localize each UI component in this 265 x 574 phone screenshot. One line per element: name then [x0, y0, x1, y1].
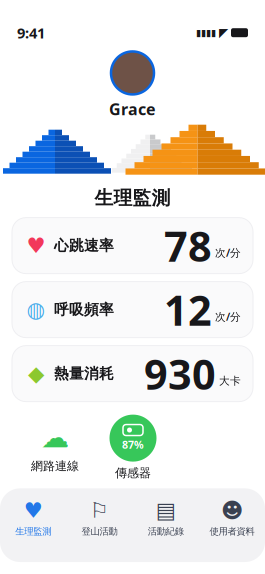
staticText: ♥ — [26, 233, 45, 258]
staticText: ◆ — [28, 361, 44, 386]
staticText: 熱量消耗 — [54, 365, 114, 383]
staticText: 78 — [164, 218, 212, 273]
staticText: 生理監測 — [94, 187, 170, 210]
button[interactable]: ⚐ — [66, 493, 132, 542]
staticText: ♥ — [24, 498, 43, 523]
staticText: 次/分 — [215, 309, 241, 324]
staticText: ▤ — [156, 498, 176, 523]
staticText: 大卡 — [219, 374, 241, 388]
button[interactable]: ♥ — [12, 218, 253, 274]
button[interactable]: ☻ — [199, 493, 265, 542]
staticText: 930 — [144, 346, 216, 401]
staticText: ◍ — [26, 297, 45, 322]
staticText: 9:41 — [17, 23, 45, 42]
button[interactable]: ♥ — [0, 493, 66, 542]
staticText: 生理監測 — [15, 526, 51, 537]
staticText: 心跳速率 — [54, 237, 114, 255]
staticText: ◤ — [219, 26, 228, 39]
staticText: ☻ — [221, 498, 243, 523]
staticText: 87% — [122, 437, 144, 452]
button[interactable]: ☁ — [16, 422, 94, 473]
staticText: ⚐ — [90, 498, 109, 523]
button[interactable]: ◆ — [12, 346, 253, 402]
staticText: 呼吸頻率 — [54, 301, 114, 319]
staticText: 網路連線 — [31, 458, 79, 473]
staticText: 使用者資料 — [209, 526, 254, 537]
staticText: 活動紀錄 — [148, 526, 184, 537]
button[interactable]: ◍ — [12, 282, 253, 338]
staticText: ▮▮▮▮ — [196, 27, 216, 38]
button[interactable]: ▤ — [132, 493, 199, 542]
staticText: Grace — [109, 98, 156, 120]
staticText: 12 — [164, 282, 212, 337]
staticText: 登山活動 — [81, 526, 117, 537]
staticText: ☁ — [41, 422, 69, 453]
staticText: 傳感器 — [115, 466, 151, 480]
button[interactable]: 87% — [94, 415, 172, 480]
staticText: 次/分 — [215, 245, 241, 260]
